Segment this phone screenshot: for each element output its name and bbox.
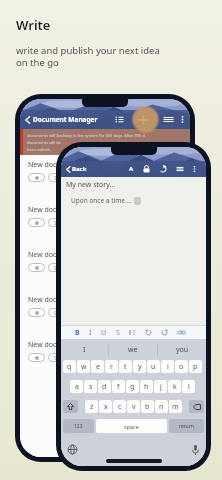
button[interactable]: y: [133, 360, 146, 373]
staticText: Story: [54, 265, 65, 271]
button[interactable]: My new story...: [61, 177, 206, 325]
button[interactable]: o: [175, 360, 188, 373]
staticText: k: [173, 382, 177, 392]
staticText: removed. Document Life resets when the: [63, 140, 141, 145]
button[interactable]: j: [154, 380, 167, 393]
staticText: B: [75, 328, 80, 338]
button[interactable]: p: [189, 360, 202, 373]
button[interactable]: h: [140, 380, 153, 393]
staticText: space: [124, 423, 139, 430]
staticText: Story: [54, 220, 65, 226]
staticText: c: [118, 402, 122, 412]
button[interactable]: 123: [63, 419, 94, 433]
staticText: i: [167, 362, 169, 372]
staticText: e: [96, 362, 100, 372]
button[interactable]: z: [85, 400, 98, 413]
staticText: Story: [54, 355, 65, 361]
staticText: Document Manager: [33, 115, 98, 124]
staticText: p: [193, 362, 198, 372]
staticText: t: [124, 362, 127, 372]
staticText: write and publish your next idea on the …: [16, 44, 160, 69]
button[interactable]: x: [99, 400, 112, 413]
staticText: m: [172, 402, 179, 412]
staticText: you: [176, 345, 189, 355]
button[interactable]: f: [112, 380, 125, 393]
button[interactable]: New document: [28, 205, 190, 245]
staticText: Story: [54, 175, 65, 181]
staticText: I: [89, 328, 92, 338]
button[interactable]: [189, 400, 204, 413]
staticText: f: [117, 382, 120, 392]
staticText: New document: [28, 250, 79, 260]
staticText: l: [188, 382, 190, 392]
button[interactable]: c: [113, 400, 126, 413]
staticText: u: [151, 362, 156, 372]
staticText: j: [160, 382, 162, 392]
button[interactable]: l: [182, 380, 195, 393]
button[interactable]: Document Manager: [24, 110, 186, 129]
staticText: x: [104, 402, 108, 412]
staticText: r: [110, 362, 113, 372]
staticText: h: [144, 382, 149, 392]
staticText: I: [83, 345, 86, 355]
staticText: b: [145, 402, 150, 412]
staticText: y: [138, 362, 142, 372]
button[interactable]: return: [169, 419, 204, 433]
staticText: Story: [54, 310, 65, 316]
button[interactable]: r: [105, 360, 118, 373]
button[interactable]: k: [168, 380, 181, 393]
staticText: 123: [74, 423, 83, 430]
staticText: My new story...: [66, 180, 116, 190]
staticText: return: [179, 423, 194, 430]
button[interactable]: New document: [28, 250, 190, 290]
button[interactable]: New document: [28, 340, 190, 380]
staticText: d: [102, 382, 107, 392]
staticText: U: [101, 328, 107, 338]
button[interactable]: g: [126, 380, 139, 393]
button[interactable]: New document: [28, 295, 190, 335]
staticText: q: [67, 362, 72, 372]
staticText: a: [75, 382, 79, 392]
staticText: n: [159, 402, 164, 412]
button[interactable]: e: [91, 360, 104, 373]
button[interactable]: v: [127, 400, 140, 413]
button[interactable]: u: [147, 360, 160, 373]
staticText: Write: [16, 16, 51, 34]
staticText: New document: [28, 295, 79, 305]
staticText: New document: [28, 340, 79, 350]
button[interactable]: [63, 400, 78, 413]
button[interactable]: space: [96, 419, 167, 433]
button[interactable]: i: [161, 360, 174, 373]
button[interactable]: s: [84, 380, 97, 393]
staticText: v: [132, 402, 136, 412]
button[interactable]: Back: [65, 161, 202, 177]
staticText: s: [89, 382, 93, 392]
button[interactable]: a: [70, 380, 83, 393]
staticText: A: [129, 165, 134, 173]
staticText: New document: [28, 205, 79, 215]
staticText: New document: [28, 160, 79, 170]
button[interactable]: n: [155, 400, 168, 413]
staticText: w: [81, 362, 87, 372]
button[interactable]: t: [119, 360, 132, 373]
staticText: Upon once a time ...: [71, 196, 132, 205]
staticText: z: [90, 402, 94, 412]
button[interactable]: q: [63, 360, 76, 373]
button[interactable]: w: [77, 360, 90, 373]
staticText: Back: [72, 165, 87, 173]
button[interactable]: b: [141, 400, 154, 413]
button[interactable]: m: [169, 400, 182, 413]
staticText: o: [179, 362, 184, 372]
staticText: g: [130, 382, 135, 392]
staticText: documents will live/stay in the system f…: [27, 133, 145, 138]
button[interactable]: d: [98, 380, 111, 393]
staticText: been edited.: [27, 147, 51, 152]
staticText: we: [128, 345, 138, 355]
staticText: S: [116, 328, 120, 338]
button[interactable]: New document: [28, 160, 190, 200]
staticText: documents will be: [27, 140, 63, 145]
